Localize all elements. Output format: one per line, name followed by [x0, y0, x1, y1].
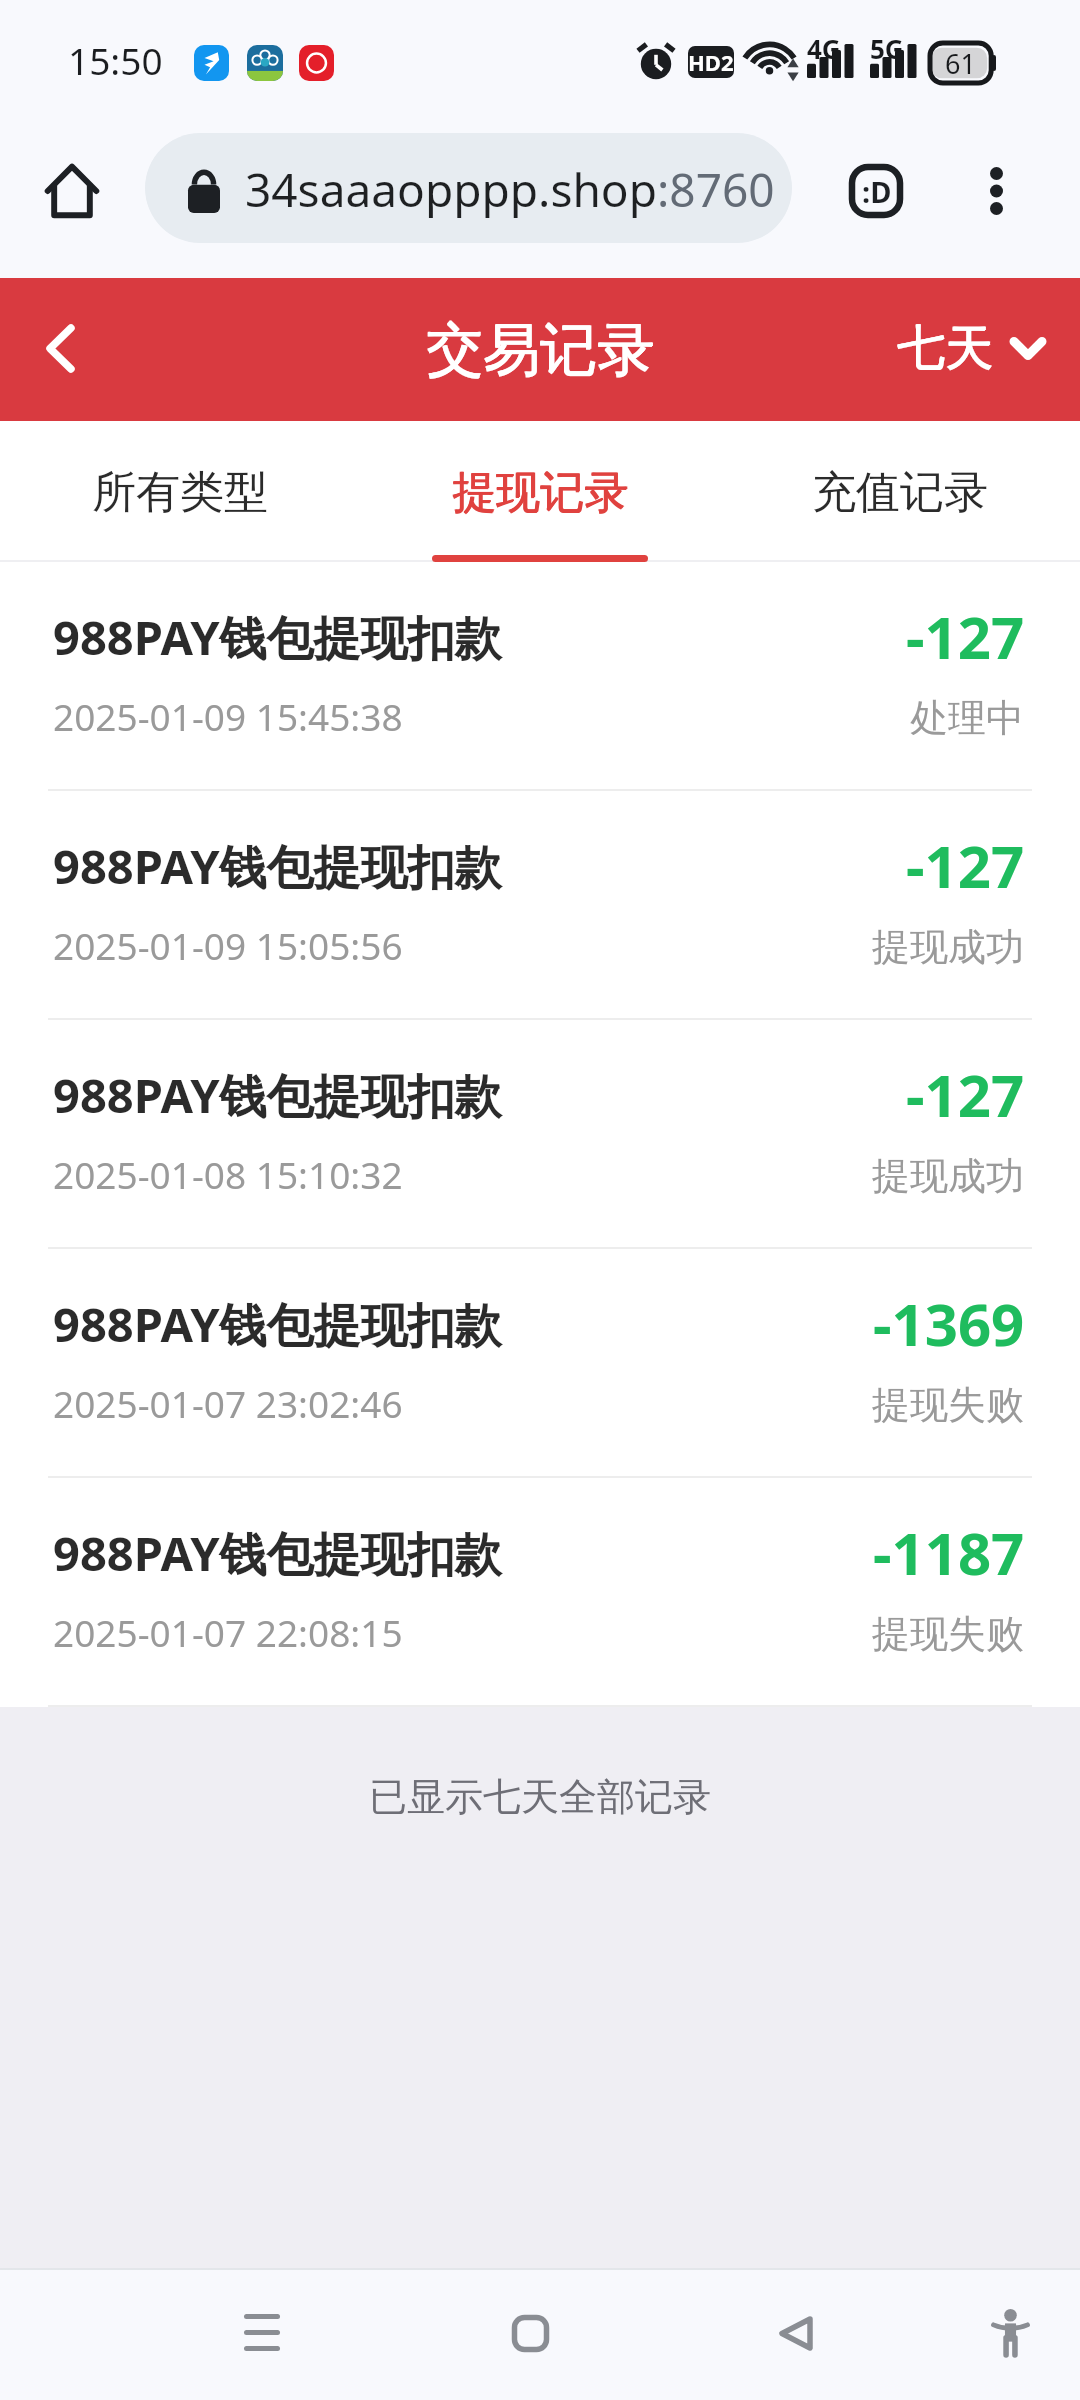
staticText: -127	[906, 826, 1025, 905]
staticText: 提现成功	[872, 1152, 1024, 1200]
button[interactable]: Back	[14, 302, 106, 394]
staticText: 处理中	[910, 694, 1024, 742]
staticText: 交易记录	[427, 314, 655, 386]
staticText: 提现记录	[452, 466, 628, 521]
staticText: 充值记录	[812, 465, 988, 520]
button[interactable]: Switch tabs	[831, 146, 921, 236]
staticText: 988PAY钱包提现扣款	[53, 1063, 502, 1127]
staticText: 988PAY钱包提现扣款	[53, 1292, 502, 1356]
staticText: 提现成功	[872, 923, 1024, 971]
button[interactable]: More options	[951, 146, 1041, 236]
staticText: 2025-01-09 15:45:38	[53, 691, 403, 741]
staticText: 2025-01-09 15:05:56	[53, 920, 403, 970]
button[interactable]: 988PAY钱包提现扣款	[0, 791, 1080, 1020]
button[interactable]: 提现记录	[360, 421, 720, 562]
button[interactable]: Back	[741, 2278, 851, 2388]
button[interactable]: 988PAY钱包提现扣款	[0, 1478, 1080, 1707]
staticText: 提现失败	[872, 1381, 1024, 1429]
staticText: -1187	[873, 1513, 1025, 1592]
button[interactable]: 所有类型	[0, 421, 360, 562]
staticText: 988PAY钱包提现扣款	[53, 605, 502, 669]
button[interactable]: Recent apps	[207, 2278, 317, 2388]
staticText: 七天	[897, 318, 993, 378]
button[interactable]: 34saaaopppp.shop	[145, 133, 792, 243]
button[interactable]: 988PAY钱包提现扣款	[0, 562, 1080, 791]
staticText: 七天	[897, 319, 993, 379]
button[interactable]: 七天	[897, 318, 1047, 378]
button[interactable]: 988PAY钱包提现扣款	[0, 1020, 1080, 1249]
staticText: 4G	[807, 31, 841, 65]
staticText: -127	[906, 597, 1025, 676]
button[interactable]: Home	[475, 2278, 585, 2388]
staticText: 交易记录	[426, 314, 654, 386]
staticText: 提现记录	[452, 465, 628, 520]
staticText: 2025-01-07 22:08:15	[53, 1607, 403, 1657]
button[interactable]: Home	[27, 146, 117, 236]
staticText: 所有类型	[92, 465, 268, 520]
staticText: 15:50	[68, 35, 163, 85]
button[interactable]: 充值记录	[720, 421, 1080, 562]
button[interactable]: 988PAY钱包提现扣款	[0, 1249, 1080, 1478]
staticText: 已显示七天全部记录	[369, 1773, 711, 1821]
staticText: 61	[945, 45, 976, 82]
staticText: 提现失败	[872, 1610, 1024, 1658]
staticText: 2025-01-08 15:10:32	[53, 1149, 403, 1199]
staticText: 988PAY钱包提现扣款	[53, 834, 502, 898]
staticText: 34saaaopppp.shop	[245, 158, 657, 221]
staticText: :D	[862, 172, 892, 211]
button[interactable]: Accessibility	[955, 2278, 1065, 2388]
staticText: -1369	[873, 1284, 1025, 1363]
staticText: 2025-01-07 23:02:46	[53, 1378, 403, 1428]
staticText: 提现记录	[453, 465, 629, 520]
staticText: 交易记录	[426, 315, 654, 387]
staticText: 七天	[898, 318, 994, 378]
staticText: -127	[906, 1055, 1025, 1134]
staticText: 988PAY钱包提现扣款	[53, 1521, 502, 1585]
staticText: HD2	[688, 47, 734, 77]
staticText: 5G	[870, 31, 904, 65]
staticText: :8760	[657, 158, 775, 221]
